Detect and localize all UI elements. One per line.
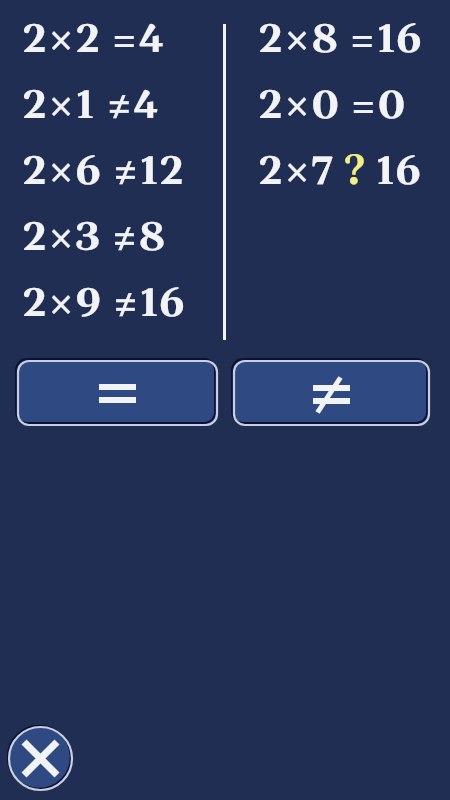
staticText: 2×8 =16 xyxy=(258,15,423,66)
button[interactable] xyxy=(16,359,219,428)
button[interactable] xyxy=(6,724,76,794)
staticText: 2×9 ≠16 xyxy=(22,279,185,330)
staticText: 2×7 ? 16 xyxy=(258,147,422,198)
staticText: 2×6 ≠12 xyxy=(22,147,185,198)
staticText: 2×3 ≠8 xyxy=(22,213,166,264)
staticText: 2×1 ≠4 xyxy=(22,81,160,132)
staticText: 2×2 =4 xyxy=(22,15,165,66)
staticText: 2×0 =0 xyxy=(258,81,406,132)
button[interactable] xyxy=(232,359,432,428)
